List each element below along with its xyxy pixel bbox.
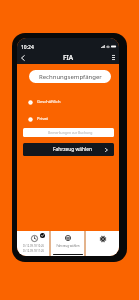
staticText: Privat	[37, 116, 49, 122]
staticText: Rechnungsempfänger	[39, 73, 102, 81]
button[interactable]: Menu	[107, 51, 119, 64]
staticText: FIA	[63, 53, 74, 62]
staticText: Bemerkungen zur Buchung	[48, 130, 93, 135]
button[interactable]: Privat	[28, 115, 88, 123]
button[interactable]: Di 12.09.18 10:26	[17, 231, 49, 256]
staticText: Fahrzeug wählen	[53, 146, 92, 153]
staticText: Geschäftlich	[37, 99, 61, 105]
button[interactable]: Geschäftlich	[28, 98, 88, 106]
button[interactable]: Bemerkungen zur Buchung	[23, 128, 114, 137]
staticText: Di 12.09.18 10:26	[23, 244, 44, 248]
button[interactable]: Back	[17, 51, 29, 64]
button[interactable]: Rechnungsempfänger	[29, 70, 111, 83]
staticText: Di 12.09.18 11:26	[23, 249, 44, 253]
staticText: Fahrzeug wählen	[56, 244, 80, 248]
button[interactable]: Fahrzeug wählen	[23, 143, 114, 156]
button[interactable]: Settings	[86, 231, 119, 256]
button[interactable]: Fahrzeug wählen	[51, 231, 84, 256]
staticText: 10:24	[21, 44, 34, 51]
